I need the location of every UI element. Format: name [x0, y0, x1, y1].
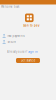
staticText: Fast payments: [7, 34, 24, 38]
staticText: Welcome back: [1, 5, 19, 8]
staticText: Scan to pay: [23, 24, 39, 27]
staticText: Secure: [7, 40, 16, 44]
button[interactable]: Get started: [16, 58, 40, 63]
staticText: Get started: [20, 59, 35, 62]
staticText: Sign in: [28, 50, 38, 53]
staticText: Already a user?: [7, 50, 27, 53]
